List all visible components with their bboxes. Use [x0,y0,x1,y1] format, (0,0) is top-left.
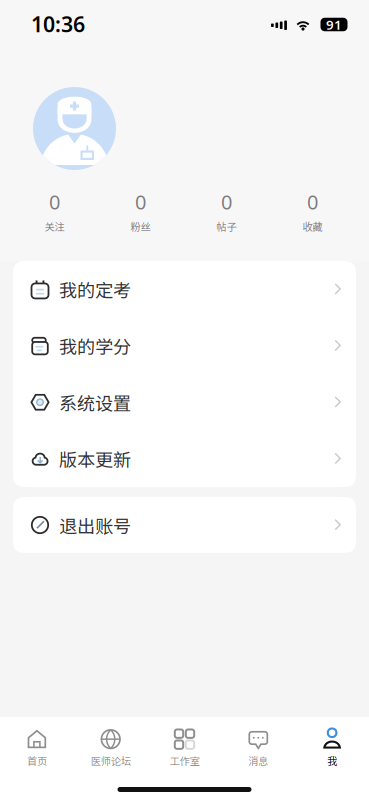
staticText: 0 [49,188,60,215]
button[interactable]: 版本更新 [13,430,356,487]
button[interactable]: 我的定考 [13,261,356,317]
staticText: 消息 [248,753,268,768]
staticText: 医师论坛 [91,753,131,768]
staticText: 首页 [27,753,47,768]
button[interactable]: 系统设置 [13,374,356,430]
staticText: 0 [307,188,318,215]
staticText: 版本更新 [59,446,131,472]
button[interactable]: 0 [269,189,355,233]
button[interactable]: 0 [97,189,183,233]
staticText: 关注 [44,219,64,234]
button[interactable]: 我 [295,722,369,774]
staticText: 粉丝 [130,219,150,234]
staticText: 退出账号 [59,512,131,538]
staticText: 我的学分 [59,333,131,359]
button[interactable]: 首页 [0,722,74,774]
button[interactable]: 0 [183,189,269,233]
staticText: 0 [135,188,146,215]
staticText: 工作室 [169,753,199,768]
button[interactable]: 我的学分 [13,317,356,374]
staticText: 91 [326,16,342,33]
staticText: 我的定考 [59,276,131,302]
button[interactable]: Profile photo [33,87,116,170]
button[interactable]: 0 [11,189,97,233]
button[interactable]: 消息 [221,722,295,774]
staticText: 我 [327,753,337,768]
staticText: 收藏 [302,219,322,234]
button[interactable]: 医师论坛 [74,722,148,774]
staticText: 帖子 [216,219,236,234]
button[interactable]: 退出账号 [13,497,356,553]
staticText: 0 [221,188,232,215]
staticText: 10:36 [31,10,85,38]
staticText: 系统设置 [59,389,131,415]
button[interactable]: 工作室 [148,722,221,774]
